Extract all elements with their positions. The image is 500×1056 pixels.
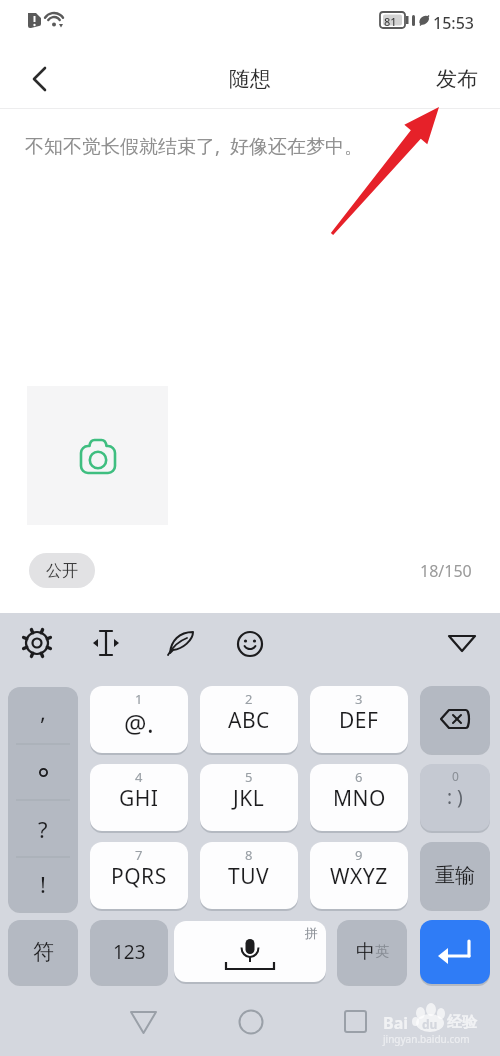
button[interactable]: 6 [310,764,408,831]
staticText: 4 [135,768,143,786]
staticText: TUV [228,862,270,891]
button[interactable]: 拼 [174,921,326,982]
staticText: GHI [119,784,159,813]
staticText: 发布 [436,66,478,92]
button[interactable] [420,686,490,753]
staticText: WXYZ [330,862,388,891]
staticText: 8 [245,846,253,864]
button[interactable]: 0 [420,764,490,831]
button[interactable] [163,625,199,661]
staticText: 7 [135,846,143,864]
staticText: 经验 [447,1013,477,1032]
staticText: PQRS [111,862,167,891]
staticText: 5 [245,768,253,786]
staticText: ABC [228,706,270,735]
staticText: 18/150 [420,560,472,582]
staticText: du [422,1016,438,1032]
staticText: 0 [452,768,459,784]
staticText: MNO [333,784,386,813]
staticText: 拼 [305,925,318,941]
button[interactable]: 7 [90,842,188,909]
button[interactable] [420,920,490,984]
staticText: ! [40,869,46,899]
button[interactable]: 5 [200,764,298,831]
staticText: 不知不觉长假就结束了, 好像还在梦中。 [25,133,363,159]
staticText: 1 [135,690,143,708]
button[interactable]: 符 [8,920,78,984]
staticText: 123 [113,939,146,965]
staticText: , [40,696,46,726]
button[interactable]: 3 [310,686,408,753]
staticText: Bai [383,1012,409,1034]
staticText: 9 [355,846,363,864]
staticText: 中 [356,940,375,964]
button[interactable] [232,625,268,661]
staticText: 随想 [229,66,271,92]
staticText: @. [124,706,155,740]
staticText: 6 [355,768,363,786]
button[interactable]: 1 [90,686,188,753]
button[interactable]: 发布 [436,66,478,92]
staticText: 重输 [435,863,475,888]
staticText: 15:53 [433,12,474,34]
button[interactable]: , [8,687,78,911]
staticText: 符 [33,939,54,965]
button[interactable] [444,625,480,661]
button[interactable]: 123 [90,920,168,984]
button[interactable] [20,55,60,99]
button[interactable]: 公开 [29,553,95,588]
staticText: 3 [355,690,363,708]
button[interactable]: 重输 [420,842,490,909]
button[interactable] [119,995,167,1043]
staticText: JKL [233,784,265,813]
staticText: 2 [245,690,253,708]
button[interactable] [27,386,168,525]
staticText: jingyan.baidu.com [383,1032,470,1046]
button[interactable] [88,625,124,661]
button[interactable]: 8 [200,842,298,909]
button[interactable]: 4 [90,764,188,831]
staticText: 公开 [46,561,78,581]
button[interactable] [227,995,275,1043]
staticText: ? [38,814,48,844]
staticText: DEF [339,706,379,735]
button[interactable]: 中 [337,920,407,984]
button[interactable]: 9 [310,842,408,909]
staticText: 81 [384,14,397,29]
staticText: : ) [447,784,463,810]
button[interactable] [331,995,379,1043]
button[interactable]: 2 [200,686,298,753]
button[interactable] [19,625,55,661]
staticText: 英 [375,943,389,961]
